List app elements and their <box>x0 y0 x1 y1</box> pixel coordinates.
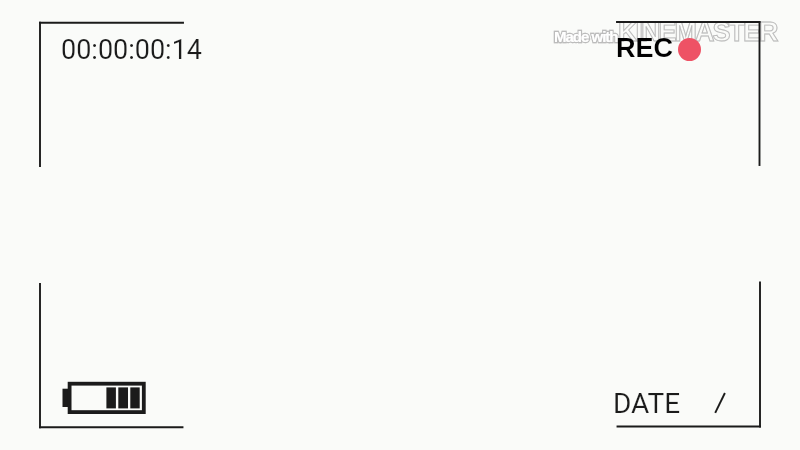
staticText: 00:00:00:14 <box>61 34 203 66</box>
staticText: Made with <box>554 28 618 45</box>
button[interactable]: Battery level <box>62 380 152 420</box>
other: Date separator <box>710 390 730 416</box>
staticText: KINEMASTER <box>618 17 777 47</box>
button[interactable]: 00:00:00:14 <box>61 34 203 66</box>
button[interactable]: REC <box>616 33 674 63</box>
button[interactable]: DATE <box>613 387 681 420</box>
staticText: REC <box>616 33 674 63</box>
button[interactable]: Recording indicator <box>678 38 701 61</box>
staticText: Made with <box>554 28 618 45</box>
staticText: DATE <box>613 387 681 420</box>
